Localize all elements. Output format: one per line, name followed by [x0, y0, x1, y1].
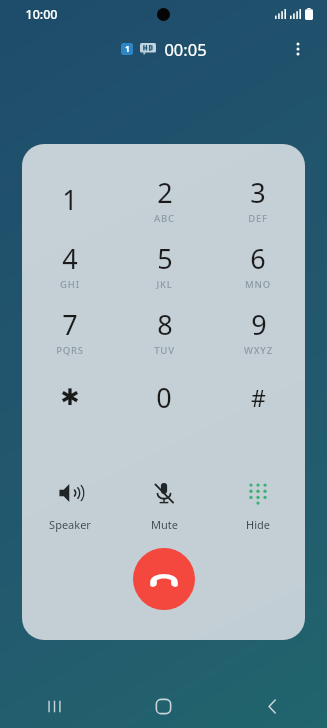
staticText: 9 [251, 306, 267, 343]
staticText: DEF [248, 212, 268, 225]
button[interactable]: 0 [117, 364, 211, 430]
button[interactable]: End call [133, 548, 195, 610]
staticText: # [251, 382, 266, 413]
staticText: GHI [60, 278, 80, 291]
staticText: PQRS [56, 344, 84, 357]
button[interactable]: 7 [22, 298, 117, 364]
button[interactable]: Back [218, 684, 327, 728]
staticText: TUV [154, 344, 175, 357]
button[interactable]: Hide keypad [211, 474, 305, 536]
staticText: ABC [154, 212, 175, 225]
button[interactable]: 2 [117, 166, 211, 232]
staticText: Hide [246, 517, 270, 532]
staticText: 10:00 [25, 6, 58, 23]
staticText: 2 [157, 174, 173, 211]
button[interactable]: Speaker [22, 474, 117, 536]
button[interactable]: 1 [22, 166, 117, 232]
staticText: ✱ [60, 384, 80, 411]
staticText: 1 [125, 43, 130, 55]
button[interactable]: 9 [211, 298, 305, 364]
button[interactable]: 6 [211, 232, 305, 298]
staticText: 4 [62, 240, 78, 277]
staticText: 7 [62, 306, 78, 343]
staticText: 8 [157, 306, 173, 343]
button[interactable]: More options [279, 30, 317, 68]
staticText: Mute [151, 517, 178, 532]
other: Hide keypad [247, 482, 269, 504]
button[interactable]: 3 [211, 166, 305, 232]
staticText: JKL [156, 278, 173, 291]
other: Mute [152, 481, 176, 505]
staticText: 00:05 [164, 38, 207, 60]
button[interactable]: 5 [117, 232, 211, 298]
staticText: 3 [250, 174, 266, 211]
button[interactable]: Mute [117, 474, 211, 536]
button[interactable]: Recent apps [0, 684, 109, 728]
button[interactable]: # [211, 364, 305, 430]
staticText: 0 [156, 379, 172, 416]
staticText: WXYZ [244, 344, 273, 357]
staticText: Speaker [49, 517, 91, 532]
staticText: MNO [245, 278, 271, 291]
button[interactable]: 8 [117, 298, 211, 364]
button[interactable]: ✱ [22, 364, 117, 430]
button[interactable]: 4 [22, 232, 117, 298]
staticText: 1 [62, 181, 78, 218]
other: Speaker [58, 481, 82, 505]
staticText: 6 [250, 240, 266, 277]
staticText: 5 [157, 240, 173, 277]
button[interactable]: Home [109, 684, 218, 728]
